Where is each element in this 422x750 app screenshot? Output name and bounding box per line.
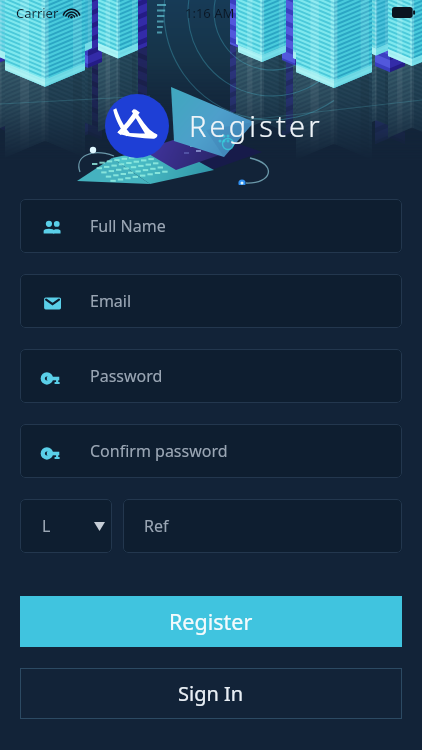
staticText: Register: [189, 106, 323, 145]
staticText: Confirm password: [90, 440, 228, 462]
button[interactable]: Register: [20, 596, 402, 647]
button[interactable]: Sign In: [20, 668, 402, 719]
staticText: Email: [90, 290, 132, 312]
button[interactable]: Confirm password: [20, 424, 402, 478]
staticText: Register: [169, 607, 253, 636]
staticText: L: [42, 515, 51, 537]
staticText: Ref: [144, 515, 169, 537]
button[interactable]: L: [20, 499, 112, 553]
button[interactable]: Password: [20, 349, 402, 403]
staticText: Sign In: [178, 680, 244, 707]
staticText: Full Name: [90, 215, 166, 237]
staticText: Password: [90, 365, 163, 387]
button[interactable]: Full Name: [20, 199, 402, 253]
button[interactable]: Ref: [123, 499, 402, 553]
button[interactable]: Email: [20, 274, 402, 328]
staticText: 1:16 AM: [185, 4, 235, 22]
staticText: Carrier: [16, 4, 59, 22]
